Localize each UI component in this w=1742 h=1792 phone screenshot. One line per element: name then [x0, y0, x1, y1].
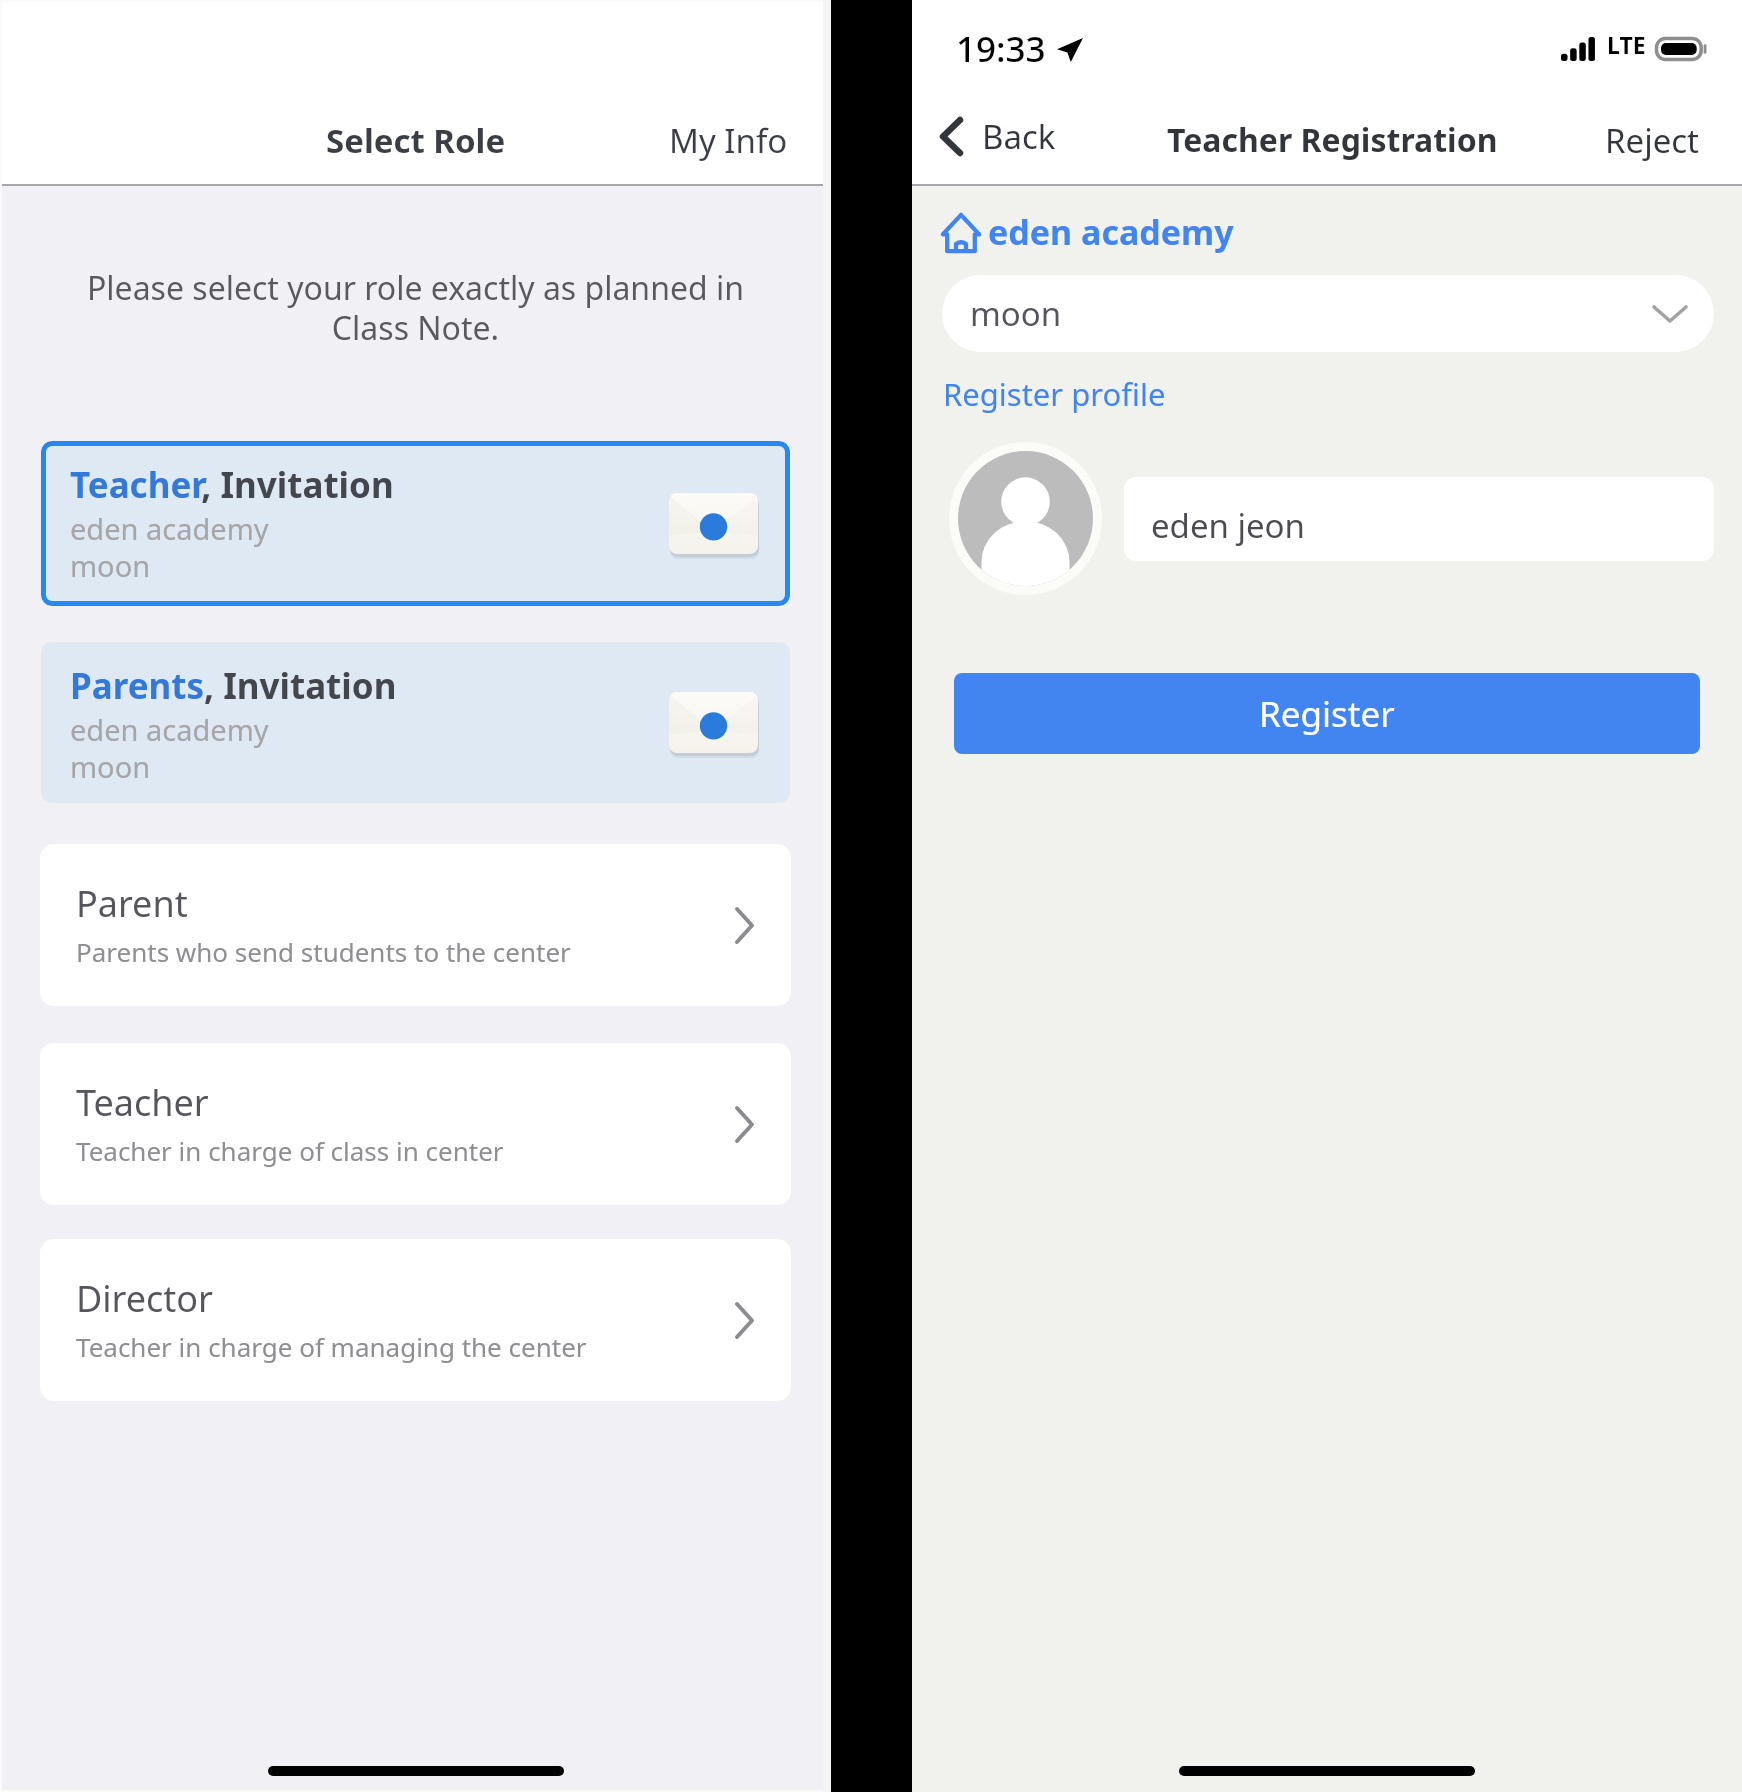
- staticText: Director: [76, 1274, 213, 1323]
- staticText: Reject: [1605, 118, 1700, 163]
- button[interactable]: Open class dropdown: [1640, 284, 1700, 344]
- staticText: Register profile: [943, 373, 1166, 415]
- button[interactable]: Teacher: [40, 1043, 791, 1205]
- staticText: eden academy moon: [70, 710, 269, 787]
- button[interactable]: Register profile: [943, 373, 1166, 415]
- button[interactable]: Reject: [1605, 118, 1700, 163]
- staticText: Teacher Registration: [1167, 118, 1498, 162]
- staticText: Teacher in charge of class in center: [76, 1133, 504, 1168]
- staticText: Register: [1259, 690, 1395, 738]
- staticText: Select Role: [326, 118, 506, 163]
- staticText: Parents who send students to the center: [76, 934, 571, 969]
- staticText: Please select your role exactly as plann…: [0, 266, 831, 350]
- staticText: moon: [970, 291, 1062, 336]
- button[interactable]: Back: [940, 114, 1056, 159]
- staticText: Parent: [76, 879, 188, 928]
- staticText: 19:33: [956, 25, 1046, 73]
- button[interactable]: Parent: [40, 844, 791, 1006]
- staticText: Back: [982, 114, 1056, 159]
- staticText: LTE: [1607, 29, 1646, 60]
- staticText: Teacher: [76, 1078, 209, 1127]
- staticText: Parents, Invitation: [70, 662, 397, 710]
- staticText: eden academy moon: [70, 509, 269, 586]
- button[interactable]: Change profile photo: [949, 442, 1102, 595]
- button[interactable]: My Info: [669, 118, 788, 163]
- button[interactable]: Parents, Invitation: [41, 642, 790, 803]
- staticText: eden jeon: [1151, 503, 1305, 548]
- button[interactable]: eden jeon: [1124, 477, 1714, 561]
- staticText: eden academy: [988, 209, 1234, 255]
- staticText: My Info: [669, 118, 788, 163]
- button[interactable]: Director: [40, 1239, 791, 1401]
- button[interactable]: Teacher, Invitation: [41, 441, 790, 606]
- button[interactable]: Register: [954, 673, 1700, 754]
- staticText: Teacher, Invitation: [70, 461, 394, 509]
- staticText: Teacher in charge of managing the center: [76, 1329, 587, 1364]
- button[interactable]: moon: [942, 275, 1714, 352]
